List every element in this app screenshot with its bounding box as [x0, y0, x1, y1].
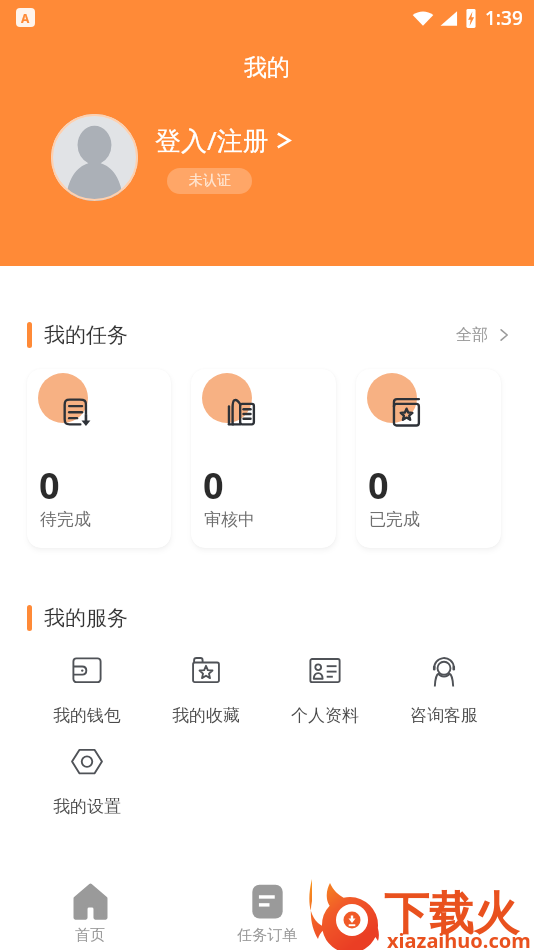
staticText: 登入/注册: [155, 122, 269, 158]
staticText: 我的: [244, 53, 290, 82]
button[interactable]: 0: [191, 369, 336, 548]
button[interactable]: 我的钱包: [27, 655, 147, 728]
button[interactable]: 0: [356, 369, 501, 548]
staticText: 0: [203, 461, 224, 510]
staticText: 我的收藏: [172, 705, 240, 726]
button[interactable]: 咨询客服: [384, 655, 504, 728]
staticText: 下载火: [384, 886, 519, 943]
staticText: 我的设置: [53, 796, 121, 817]
staticText: 审核中: [204, 509, 255, 530]
button[interactable]: 我的设置: [27, 746, 147, 819]
button[interactable]: 登入/注册: [155, 122, 292, 158]
staticText: 咨询客服: [410, 705, 478, 726]
button[interactable]: 个人资料: [265, 655, 385, 728]
button[interactable]: 我的收藏: [146, 655, 266, 728]
staticText: 我的任务: [44, 322, 128, 348]
button[interactable]: Avatar: [51, 114, 138, 201]
button[interactable]: 首页: [50, 866, 130, 945]
staticText: xiazaihuo.com: [387, 927, 531, 950]
button[interactable]: 未认证: [167, 168, 252, 194]
staticText: 0: [368, 461, 389, 510]
staticText: 1:39: [485, 5, 523, 31]
staticText: 全部: [456, 325, 488, 345]
staticText: 任务订单: [237, 926, 297, 945]
staticText: 我的钱包: [53, 705, 121, 726]
button[interactable]: 全部: [456, 325, 512, 345]
staticText: 个人资料: [291, 705, 359, 726]
staticText: 首页: [75, 926, 105, 945]
staticText: 我的: [430, 926, 460, 945]
button[interactable]: 0: [27, 369, 171, 548]
staticText: 未认证: [189, 172, 231, 190]
staticText: 已完成: [369, 509, 420, 530]
button[interactable]: 任务订单: [227, 866, 307, 945]
staticText: 我的服务: [44, 605, 128, 631]
button[interactable]: 我的: [405, 866, 485, 945]
staticText: 待完成: [40, 509, 91, 530]
staticText: 0: [39, 461, 60, 510]
staticText: A: [21, 10, 30, 26]
